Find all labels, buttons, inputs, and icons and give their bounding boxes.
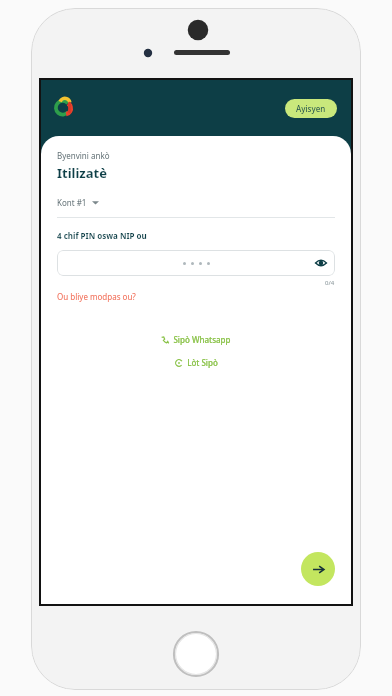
- button[interactable]: Ou bliye modpas ou?: [57, 289, 136, 304]
- staticText: Ou bliye modpas ou?: [57, 291, 136, 302]
- staticText: Itilizatè: [57, 164, 107, 182]
- staticText: Kont #1: [57, 197, 87, 208]
- button[interactable]: Show PIN: [315, 257, 327, 269]
- staticText: Lòt Sipò: [187, 357, 218, 368]
- button[interactable]: Ayisyen: [285, 99, 337, 118]
- staticText: 4 chif PIN oswa NIP ou: [57, 230, 147, 241]
- button[interactable]: Kontinye: [301, 552, 335, 586]
- staticText: Sipò Whatsapp: [173, 334, 231, 345]
- staticText: Byenvini ankò: [57, 150, 110, 161]
- staticText: 0/4: [325, 279, 335, 287]
- button[interactable]: Lòt Sipò: [171, 355, 222, 370]
- staticText: Ayisyen: [296, 103, 326, 114]
- button[interactable]: Logo: [55, 97, 77, 119]
- button[interactable]: Sipò Whatsapp: [157, 332, 235, 347]
- button[interactable]: Show PIN: [57, 250, 335, 276]
- button[interactable]: Kont #1: [57, 195, 99, 210]
